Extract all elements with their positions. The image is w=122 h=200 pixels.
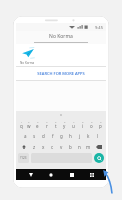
staticText: 2 xyxy=(28,120,30,123)
button[interactable]: 0 xyxy=(96,120,105,129)
staticText: 1 xyxy=(21,120,23,123)
staticText: w xyxy=(27,123,31,129)
button[interactable]: Home xyxy=(45,169,56,180)
button[interactable]: ?123 xyxy=(18,153,29,163)
button[interactable]: Backspace xyxy=(93,142,105,151)
button[interactable]: Search xyxy=(94,153,104,163)
staticText: 4 xyxy=(46,120,48,123)
staticText: p xyxy=(99,123,102,129)
staticText: SEARCH FOR MORE APPS xyxy=(37,71,85,76)
staticText: ?123 xyxy=(20,156,27,160)
staticText: u xyxy=(72,123,75,129)
button[interactable]: v xyxy=(57,142,66,151)
staticText: 9:45 xyxy=(95,25,103,30)
button[interactable]: No Korma xyxy=(16,44,106,66)
staticText: 6 xyxy=(64,120,66,123)
button[interactable]: c xyxy=(48,142,57,151)
staticText: e xyxy=(36,123,39,129)
button[interactable]: Shift xyxy=(17,142,30,151)
staticText: 5 xyxy=(55,120,57,123)
button[interactable]: z xyxy=(30,142,39,151)
button[interactable]: s xyxy=(30,131,39,140)
staticText: g xyxy=(60,133,63,139)
staticText: a xyxy=(24,133,27,139)
button[interactable]: 4 xyxy=(42,120,51,129)
button[interactable]: j xyxy=(75,131,84,140)
button[interactable]: 8 xyxy=(78,120,87,129)
button[interactable]: h xyxy=(66,131,75,140)
button[interactable]: 6 xyxy=(60,120,69,129)
button[interactable]: f xyxy=(48,131,57,140)
button[interactable]: 7 xyxy=(69,120,78,129)
staticText: z xyxy=(33,144,36,150)
button[interactable]: Back xyxy=(25,169,36,180)
button[interactable]: n xyxy=(75,142,84,151)
staticText: f xyxy=(52,133,54,139)
staticText: 0 xyxy=(100,120,102,123)
button[interactable]: 3 xyxy=(33,120,42,129)
button[interactable]: Recents xyxy=(66,169,77,180)
button[interactable]: m xyxy=(84,142,93,151)
staticText: j xyxy=(79,133,81,139)
button[interactable]: x xyxy=(39,142,48,151)
staticText: k xyxy=(87,133,90,139)
staticText: s xyxy=(33,133,36,139)
staticText: d xyxy=(42,133,45,139)
staticText: No Korma xyxy=(20,61,35,65)
button[interactable]: l xyxy=(93,131,102,140)
button[interactable]: 5 xyxy=(51,120,60,129)
button[interactable]: 2 xyxy=(25,120,33,129)
staticText: b xyxy=(69,144,72,150)
button[interactable]: Menu xyxy=(86,169,97,180)
staticText: x xyxy=(42,144,45,150)
staticText: n xyxy=(78,144,81,150)
button[interactable]: 1 xyxy=(17,120,25,129)
staticText: y xyxy=(63,123,66,129)
button[interactable]: a xyxy=(20,131,30,140)
staticText: q xyxy=(20,123,23,129)
button[interactable]: k xyxy=(84,131,93,140)
staticText: l xyxy=(97,133,99,139)
staticText: i xyxy=(82,123,84,129)
staticText: o xyxy=(90,123,93,129)
staticText: 7 xyxy=(73,120,75,123)
staticText: v xyxy=(60,144,63,150)
button[interactable]: d xyxy=(39,131,48,140)
button[interactable]: No Korma xyxy=(16,31,106,44)
button[interactable]: g xyxy=(57,131,66,140)
staticText: No Korma xyxy=(49,33,73,40)
staticText: 3 xyxy=(37,120,39,123)
staticText: r xyxy=(46,123,48,129)
staticText: 9 xyxy=(91,120,93,123)
staticText: t xyxy=(55,123,57,129)
staticText: m xyxy=(86,144,91,150)
staticText: c xyxy=(51,144,54,150)
staticText: h xyxy=(69,133,72,139)
staticText: 8 xyxy=(82,120,84,123)
button[interactable]: b xyxy=(66,142,75,151)
button[interactable]: SEARCH FOR MORE APPS xyxy=(16,67,106,80)
button[interactable]: 9 xyxy=(87,120,96,129)
